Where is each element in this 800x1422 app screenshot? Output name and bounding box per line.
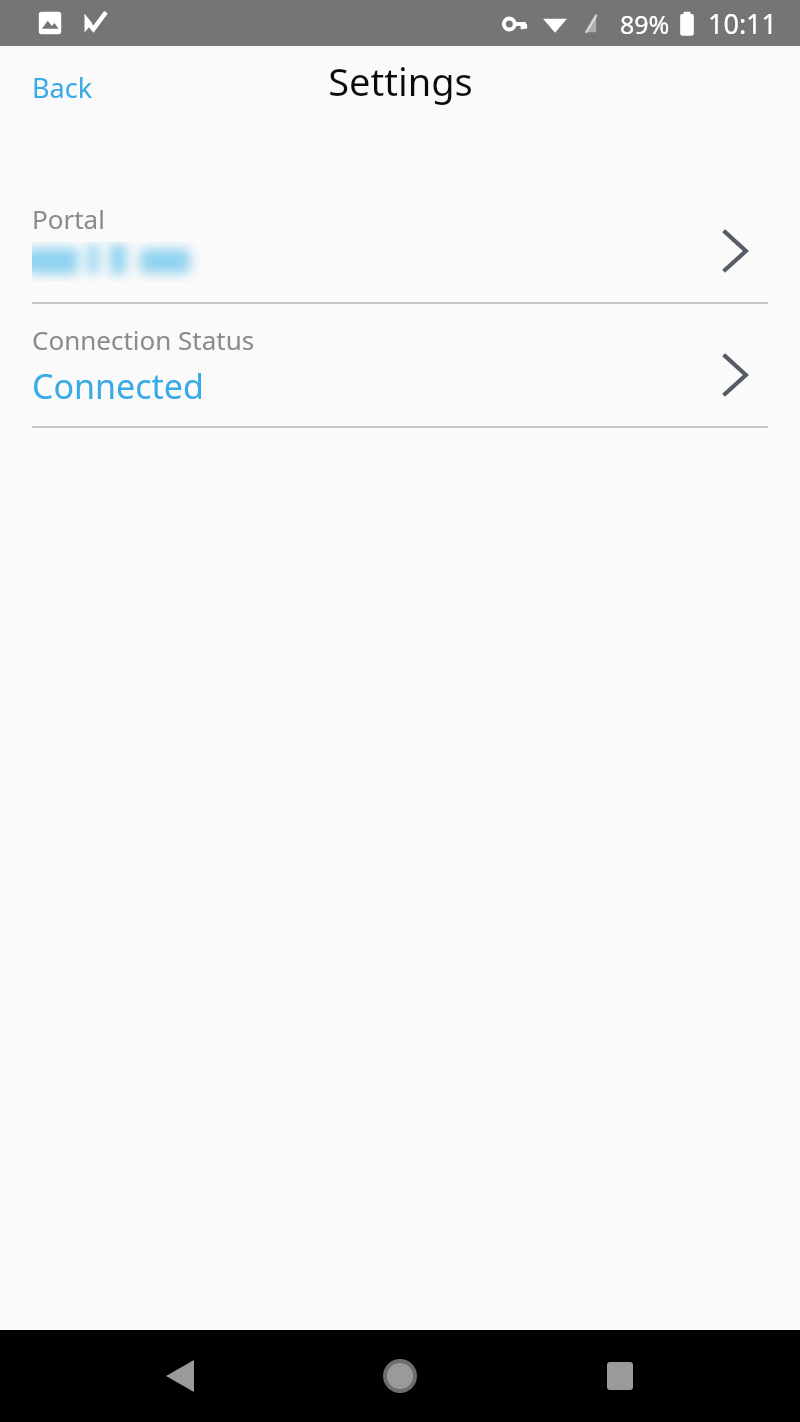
button[interactable]: Back [32,69,93,106]
other: Connection Status [722,354,748,396]
button[interactable]: Back [148,1344,212,1408]
staticText: Portal [32,201,105,236]
staticText: Connection Status [32,322,255,357]
staticText: 10:11 [708,5,778,42]
staticText: Connected [32,363,204,409]
staticText: 89% [620,7,670,41]
button[interactable]: Recent apps [588,1344,652,1408]
button[interactable]: Connection Status [0,304,800,428]
other: Portal [722,230,748,272]
button[interactable]: Portal [0,180,800,304]
staticText: Settings [328,55,473,107]
staticText: Back [32,69,93,106]
button[interactable]: Home [368,1344,432,1408]
